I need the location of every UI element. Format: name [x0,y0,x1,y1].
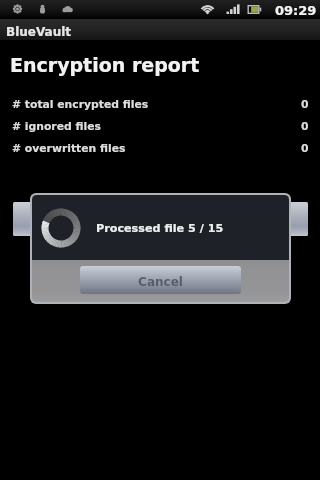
staticText: 09:29 [275,3,317,18]
staticText: 0 [301,120,309,133]
staticText: # total encrypted files [12,98,149,111]
button[interactable]: # overwritten files [0,137,320,159]
button[interactable]: # ignored files [0,115,320,137]
staticText: BlueVault [6,25,72,39]
staticText: 0 [301,98,309,111]
staticText: Encryption report [10,54,200,76]
staticText: # ignored files [12,120,101,133]
staticText: 0 [301,142,309,155]
button[interactable]: BlueVault [0,19,320,40]
staticText: Processed file 5 / 15 [96,222,224,235]
button[interactable]: Cancel [80,266,241,294]
button[interactable]: # total encrypted files [0,93,320,115]
staticText: # overwritten files [12,142,126,155]
staticText: Cancel [138,275,183,289]
